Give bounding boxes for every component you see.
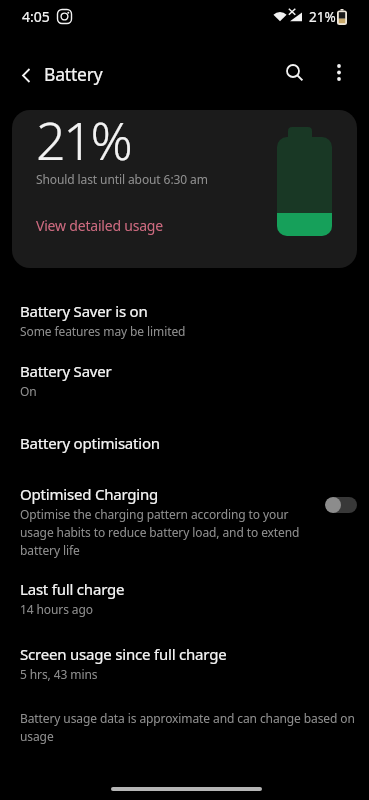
- staticText: On: [20, 383, 37, 399]
- staticText: Optimise the charging pattern according …: [20, 506, 312, 558]
- button[interactable]: Optimised Charging: [0, 478, 369, 564]
- staticText: 5 hrs, 43 mins: [20, 666, 98, 682]
- staticText: 4:05: [22, 7, 50, 26]
- staticText: 21%: [309, 8, 336, 26]
- staticText: 21%: [36, 104, 131, 175]
- staticText: Battery usage data is approximate and ca…: [20, 710, 358, 745]
- button[interactable]: [323, 56, 355, 88]
- button[interactable]: [10, 59, 42, 91]
- button[interactable]: [279, 57, 311, 89]
- staticText: 14 hours ago: [20, 601, 93, 617]
- button[interactable]: Battery Saver is on: [0, 295, 369, 345]
- button[interactable]: Last full charge: [0, 573, 369, 623]
- button[interactable]: Battery optimisation: [0, 427, 369, 459]
- staticText: Battery Saver: [20, 361, 112, 381]
- staticText: Battery: [44, 62, 103, 86]
- button[interactable]: View detailed usage: [12, 210, 187, 241]
- button[interactable]: [325, 497, 357, 513]
- staticText: Should last until about 6:30 am: [36, 171, 208, 187]
- staticText: Battery optimisation: [20, 433, 160, 453]
- button[interactable]: Battery Saver: [0, 355, 369, 405]
- staticText: Some features may be limited: [20, 323, 186, 339]
- staticText: Last full charge: [20, 579, 125, 599]
- staticText: Optimised Charging: [20, 484, 159, 504]
- staticText: View detailed usage: [36, 216, 163, 235]
- staticText: Battery Saver is on: [20, 301, 148, 321]
- button[interactable]: Screen usage since full charge: [0, 638, 369, 688]
- staticText: Screen usage since full charge: [20, 644, 227, 664]
